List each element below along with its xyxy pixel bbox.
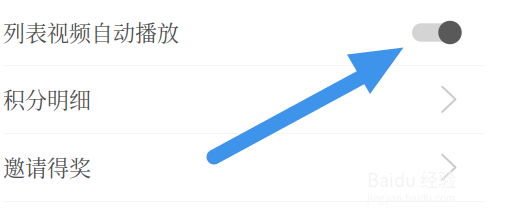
button[interactable]: 积分明细	[0, 66, 518, 133]
staticText: Baidu 经验	[367, 166, 456, 192]
staticText: jingyan.baidu.com	[367, 190, 455, 205]
staticText: 邀请得奖	[3, 151, 91, 182]
staticText: 积分明细	[3, 83, 91, 114]
staticText: 列表视频自动播放	[3, 16, 179, 47]
button[interactable]: 邀请得奖	[0, 134, 518, 201]
button[interactable]: 列表视频自动播放	[0, 0, 518, 65]
button[interactable]: 列表视频自动播放开关	[412, 20, 462, 44]
